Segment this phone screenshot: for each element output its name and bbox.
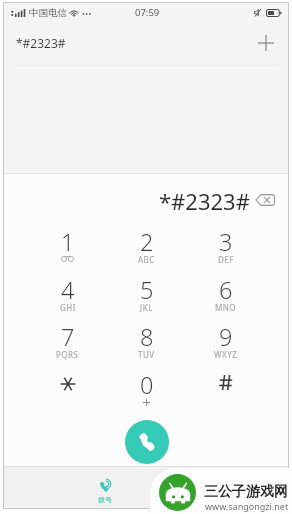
staticText: GHI <box>60 302 76 313</box>
button[interactable]: 8 <box>107 321 186 368</box>
staticText: 9 <box>219 321 233 353</box>
button[interactable]: 3 <box>186 226 265 273</box>
staticText: 0 <box>140 369 154 401</box>
staticText: TUV <box>138 349 155 360</box>
staticText: ABC <box>138 254 155 265</box>
button[interactable]: 拨号 <box>81 478 129 504</box>
staticText: 拨号 <box>98 495 112 504</box>
staticText: 2 <box>140 226 154 258</box>
button[interactable]: 0 <box>107 369 186 416</box>
button[interactable]: 9 <box>186 321 265 368</box>
button[interactable]: Delete <box>250 187 280 213</box>
staticText: *#2323# <box>16 35 66 51</box>
button[interactable] <box>28 369 107 416</box>
staticText: 4 <box>61 274 75 306</box>
button[interactable]: 4 <box>28 274 107 321</box>
button[interactable]: 6 <box>186 274 265 321</box>
staticText: 6 <box>219 274 233 306</box>
staticText: 7 <box>61 321 75 353</box>
staticText: 8 <box>140 321 154 353</box>
staticText: DEF <box>218 254 234 265</box>
staticText: JKL <box>140 302 153 313</box>
button[interactable]: 2 <box>107 226 186 273</box>
staticText: MNO <box>215 302 237 313</box>
staticText: *#2323# <box>159 186 250 216</box>
staticText: 1 <box>61 226 75 258</box>
staticText: 三公子游戏网 <box>204 483 288 501</box>
button[interactable]: 7 <box>28 321 107 368</box>
button[interactable]: Call <box>125 420 169 464</box>
staticText: WXYZ <box>214 349 238 360</box>
staticText: 5 <box>140 274 154 306</box>
staticText: 07:59 <box>135 6 160 19</box>
button[interactable] <box>186 369 265 416</box>
staticText: www.sangongzi.net <box>205 500 289 512</box>
staticText: 3 <box>219 226 233 258</box>
button[interactable]: 5 <box>107 274 186 321</box>
staticText: 中国电信 <box>29 7 67 19</box>
button[interactable]: 1 <box>28 226 107 273</box>
staticText: PQRS <box>56 349 79 360</box>
button[interactable]: Add <box>251 28 281 58</box>
